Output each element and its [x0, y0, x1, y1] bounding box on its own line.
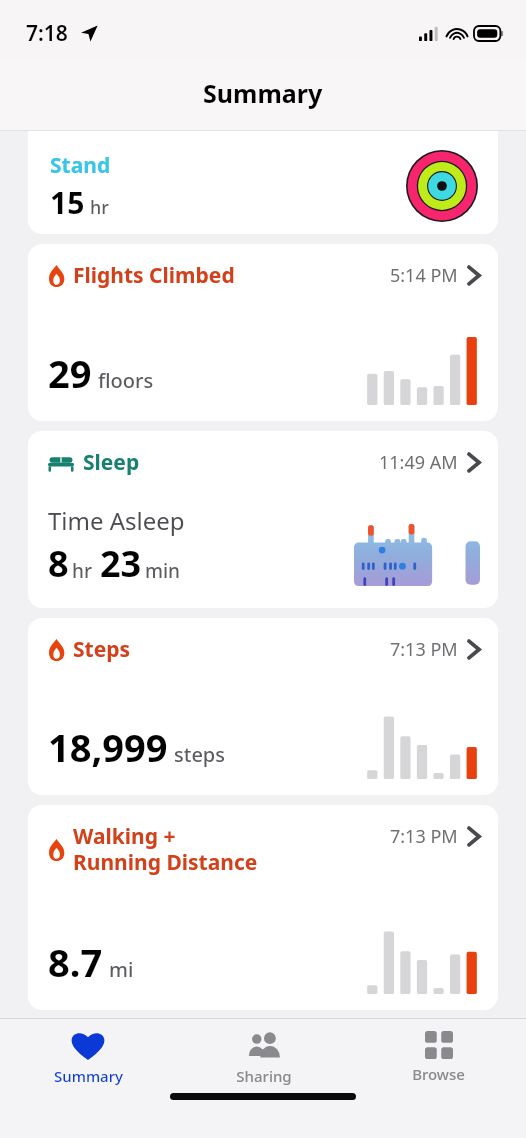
staticText: 7:13 PM: [390, 824, 458, 849]
staticText: floors: [98, 367, 154, 394]
staticText: 5:14 PM: [390, 263, 458, 288]
staticText: 7:13 PM: [390, 637, 458, 662]
staticText: Summary: [54, 1066, 123, 1086]
staticText: min: [145, 558, 181, 584]
staticText: 7:18: [26, 19, 68, 48]
staticText: 8: [48, 539, 69, 588]
staticText: mi: [109, 956, 134, 983]
staticText: steps: [174, 741, 225, 768]
staticText: 23: [100, 539, 142, 588]
staticText: Stand: [50, 151, 111, 180]
staticText: Time Asleep: [48, 504, 185, 537]
button[interactable]: Sharing: [176, 1019, 351, 1086]
staticText: hr: [90, 195, 109, 220]
button[interactable]: Steps: [28, 618, 498, 795]
staticText: Steps: [73, 635, 131, 664]
button[interactable]: Walking + Running Distance: [28, 805, 498, 1010]
staticText: 15: [50, 182, 85, 223]
button[interactable]: Summary: [0, 1019, 176, 1086]
staticText: Browse: [412, 1064, 465, 1084]
staticText: Summary: [203, 76, 323, 110]
staticText: 29: [48, 347, 92, 399]
button[interactable]: Stand: [28, 131, 498, 234]
button[interactable]: Flights Climbed: [28, 244, 498, 421]
button[interactable]: Sleep: [28, 431, 498, 608]
staticText: Sleep: [83, 448, 140, 477]
staticText: 18,999: [48, 721, 168, 773]
staticText: Flights Climbed: [73, 261, 235, 290]
other: Sharing: [245, 1031, 283, 1061]
staticText: hr: [72, 558, 92, 584]
staticText: 8.7: [48, 936, 103, 988]
staticText: 11:49 AM: [379, 450, 458, 475]
other: Browse: [425, 1031, 453, 1059]
button[interactable]: Browse: [351, 1019, 526, 1084]
other: Summary: [71, 1031, 105, 1061]
staticText: Sharing: [236, 1066, 292, 1086]
staticText: Walking + Running Distance: [73, 822, 258, 877]
